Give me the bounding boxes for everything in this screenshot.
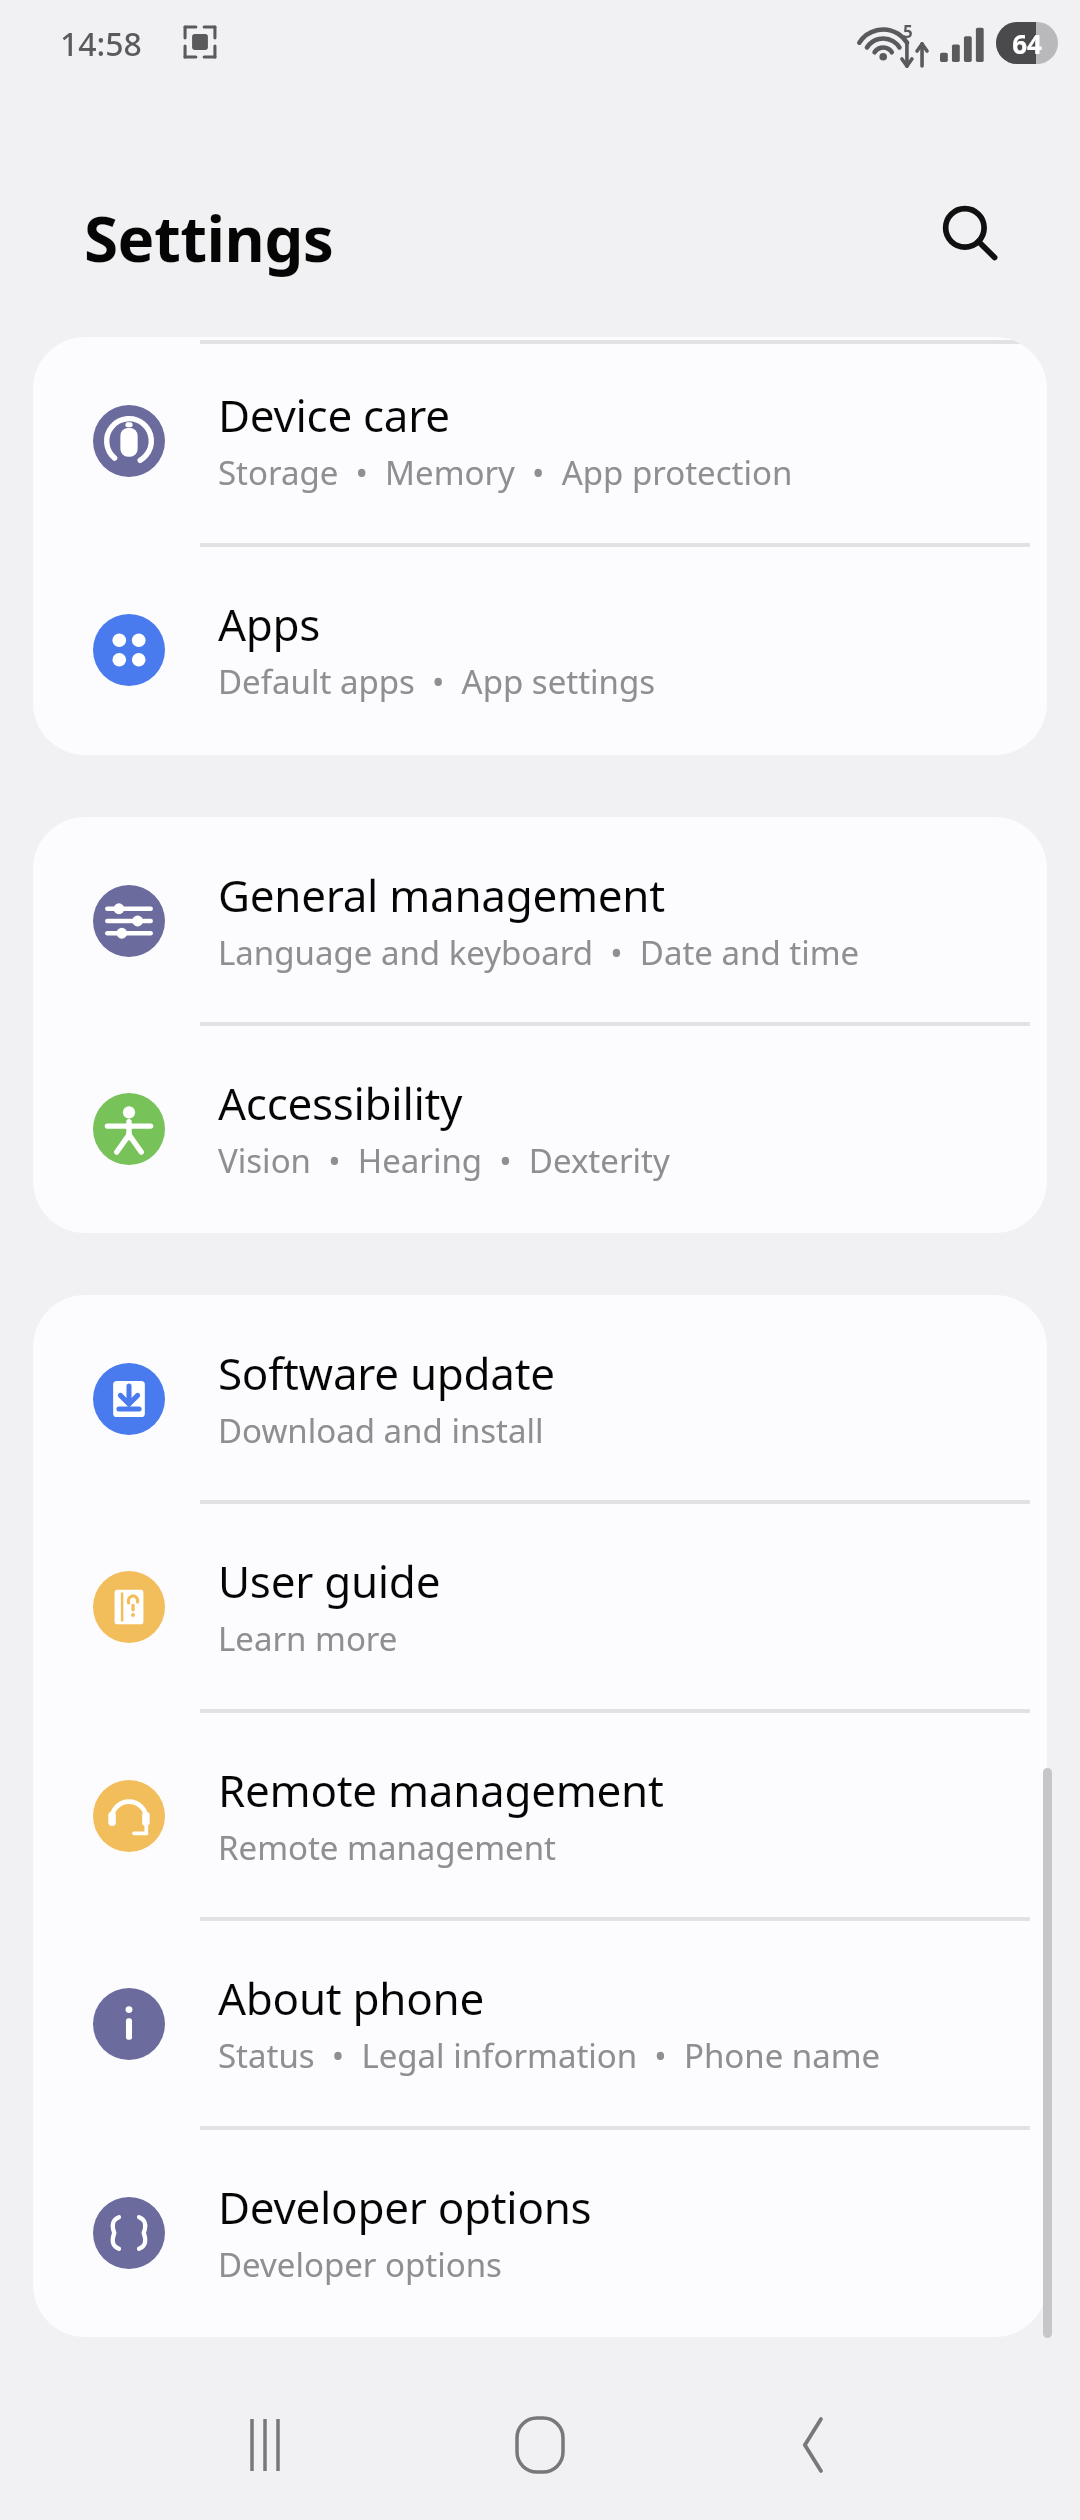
staticText: Developer options [218,2177,592,2237]
button[interactable]: Home [460,2380,620,2510]
staticText: General management [218,865,665,925]
button[interactable]: General management [33,817,1047,1025]
staticText: Remote management [218,1825,557,1870]
button[interactable]: Search [916,181,1020,285]
button[interactable]: About phone [33,1920,1047,2128]
staticText: Status • Legal information • Phone name [218,2033,881,2078]
staticText: Accessibility [218,1073,463,1133]
button[interactable]: Recent apps [185,2380,345,2510]
button[interactable]: Back [735,2380,895,2510]
button[interactable]: Accessibility [33,1025,1047,1233]
staticText: Learn more [218,1616,398,1661]
staticText: User guide [218,1551,441,1611]
button[interactable]: Software update [33,1295,1047,1503]
staticText: Storage • Memory • App protection [218,450,793,495]
staticText: Remote management [218,1760,664,1820]
button[interactable]: Apps [33,546,1047,754]
staticText: Software update [218,1343,555,1403]
staticText: Default apps • App settings [218,659,656,704]
button[interactable]: Device care [33,337,1047,545]
staticText: About phone [218,1968,484,2028]
staticText: 5 [903,20,913,43]
button[interactable]: User guide [33,1503,1047,1711]
staticText: 14:58 [60,22,142,66]
staticText: Device care [218,385,450,445]
staticText: Download and install [218,1408,544,1453]
staticText: Developer options [218,2242,502,2287]
staticText: Settings [84,196,334,280]
staticText: Apps [218,594,321,654]
button[interactable]: Remote management [33,1712,1047,1920]
staticText: Language and keyboard • Date and time [218,930,860,975]
staticText: 64 [1012,26,1042,61]
button[interactable]: Developer options [33,2129,1047,2337]
staticText: Vision • Hearing • Dexterity [218,1138,670,1183]
